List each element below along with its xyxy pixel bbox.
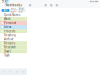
- button[interactable]: Compose: [44, 4, 47, 6]
- staticText: Notebooks: [5, 3, 21, 7]
- button[interactable]: Projects: [0, 29, 27, 33]
- staticText: Recipes: [4, 41, 15, 45]
- button[interactable]: Attachments: [13, 68, 20, 75]
- staticText: Trash: [4, 54, 10, 57]
- button[interactable]: Share: [50, 4, 52, 6]
- staticText: Research: [4, 46, 16, 49]
- button[interactable]: Personal: [0, 21, 27, 25]
- button[interactable]: Tags: [7, 68, 14, 75]
- button[interactable]: All: [2, 9, 9, 12]
- button[interactable]: Recent: [10, 9, 17, 12]
- staticText: Recent: [10, 7, 16, 14]
- staticText: Projects: [4, 29, 15, 33]
- staticText: Personal: [4, 21, 16, 25]
- button[interactable]: Trash: [0, 53, 27, 57]
- button[interactable]: Folders: [0, 68, 7, 75]
- staticText: Work: [4, 17, 10, 21]
- button[interactable]: Reading: [0, 33, 27, 37]
- staticText: All: [3, 9, 7, 12]
- button[interactable]: Recipes: [0, 41, 27, 45]
- staticText: Shared: [18, 7, 24, 14]
- staticText: Archive: [4, 37, 14, 41]
- button[interactable]: Work: [0, 17, 27, 21]
- staticText: 9:41: [2, 0, 9, 3]
- button[interactable]: Quick Notes: [0, 13, 27, 17]
- staticText: Ideas: [4, 25, 11, 29]
- staticText: Quick Notes: [4, 13, 20, 17]
- button[interactable]: Shared: [18, 9, 25, 12]
- button[interactable]: New Note: [20, 68, 27, 75]
- button[interactable]: Research: [0, 45, 27, 49]
- button[interactable]: Sidebar: [29, 4, 31, 6]
- button[interactable]: Travel: [0, 49, 27, 53]
- button[interactable]: Archive: [0, 37, 27, 41]
- staticText: Travel: [4, 50, 11, 53]
- button[interactable]: More: [56, 4, 58, 6]
- staticText: Reading: [4, 33, 16, 37]
- button[interactable]: Ideas: [0, 25, 27, 29]
